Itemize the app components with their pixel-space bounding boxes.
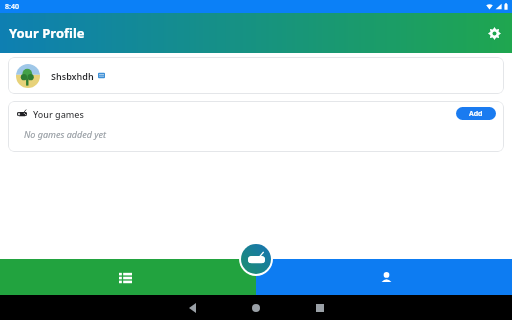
staticText: Shsbxhdh — [51, 70, 94, 82]
staticText: Your Profile — [9, 24, 85, 42]
button[interactable]: Profile — [256, 259, 512, 295]
staticText: Add — [469, 109, 483, 119]
button[interactable]: Settings — [483, 22, 505, 44]
button[interactable]: Shsbxhdh — [8, 57, 504, 94]
staticText: Your games — [33, 108, 84, 120]
button[interactable]: Add — [456, 107, 496, 120]
button[interactable]: Games list — [0, 259, 256, 295]
button[interactable]: Play — [241, 244, 271, 274]
staticText: No games added yet — [24, 128, 106, 140]
staticText: 8:40 — [5, 2, 19, 12]
